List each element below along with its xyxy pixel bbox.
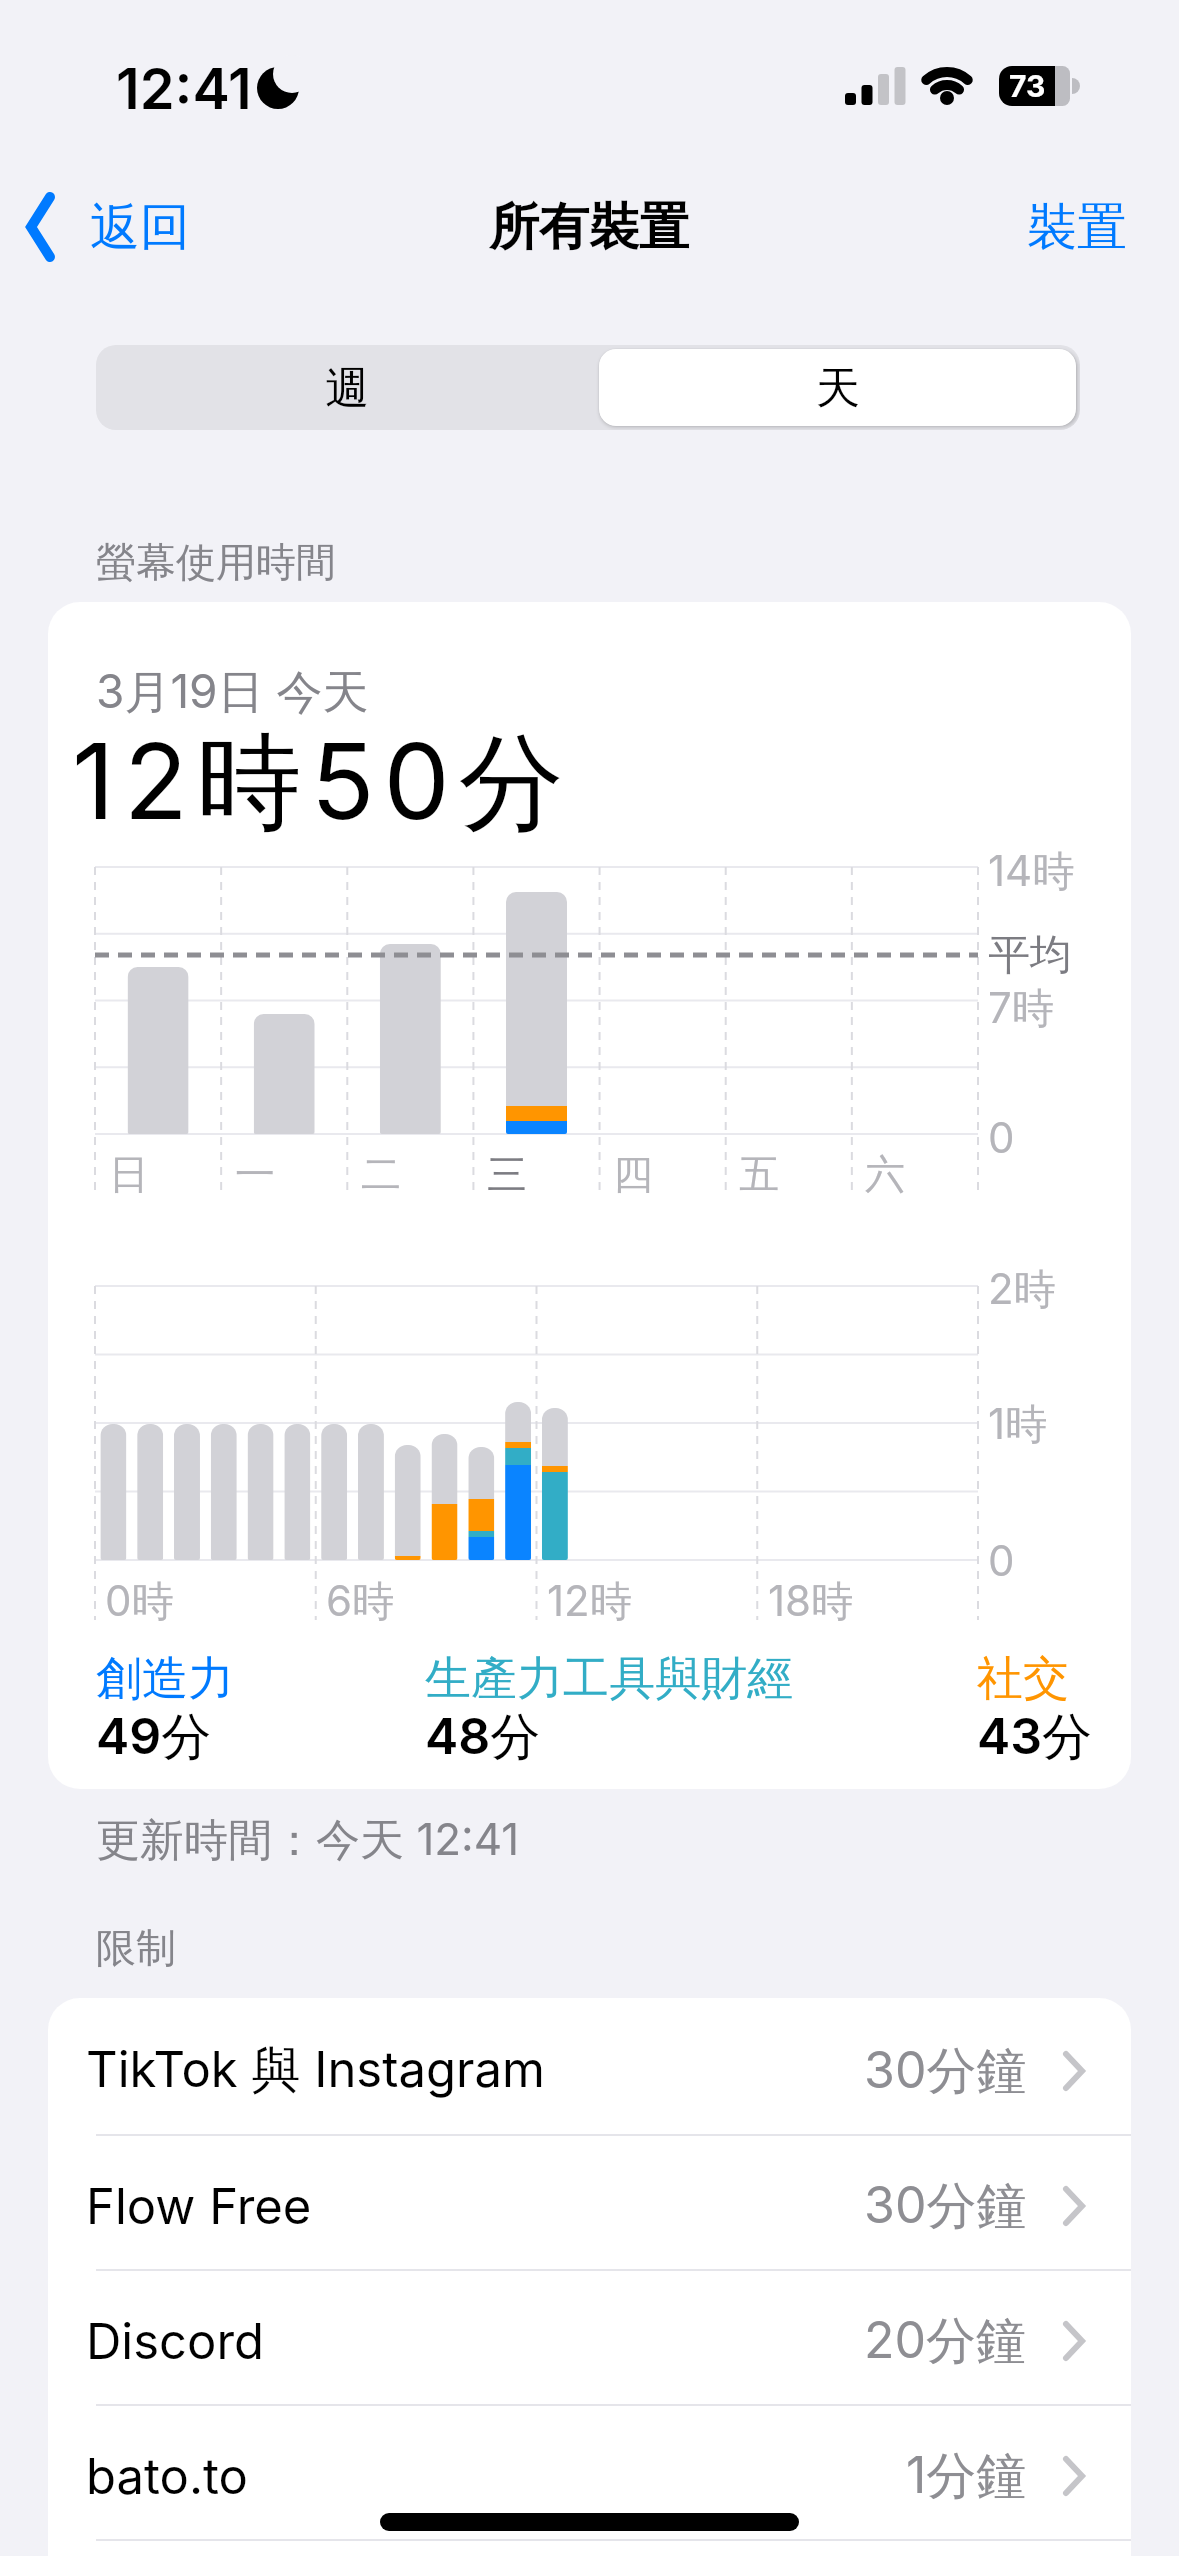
staticText: 1時 <box>988 1398 1048 1451</box>
staticText: 12時50分 <box>72 717 573 850</box>
staticText: 返回 <box>90 196 190 259</box>
staticText: Flow Free <box>86 2177 312 2236</box>
staticText: 社交 <box>977 1650 1069 1708</box>
staticText: 14時 <box>988 845 1075 898</box>
staticText: 0時 <box>105 1575 174 1628</box>
staticText: 0 <box>988 1112 1015 1163</box>
staticText: 48分 <box>425 1706 541 1769</box>
staticText: 一 <box>235 1149 275 1199</box>
staticText: 三 <box>487 1149 527 1199</box>
staticText: 四 <box>613 1149 653 1199</box>
staticText: 73 <box>1009 68 1046 104</box>
staticText: 30分鐘 <box>864 2175 1027 2238</box>
staticText: 7時 <box>988 982 1054 1035</box>
staticText: 49分 <box>96 1706 212 1769</box>
staticText: 週 <box>325 361 369 416</box>
staticText: 12:41 <box>116 55 252 123</box>
staticText: bato.to <box>86 2447 248 2506</box>
staticText: 五 <box>739 1149 779 1199</box>
staticText: 2時 <box>988 1263 1056 1316</box>
staticText: 6時 <box>326 1575 395 1628</box>
staticText: 日 <box>109 1149 149 1199</box>
button[interactable] <box>48 2004 1131 2138</box>
staticText: 20分鐘 <box>864 2310 1027 2373</box>
staticText: 限制 <box>96 1923 176 1973</box>
staticText: 裝置 <box>1027 196 1127 259</box>
staticText: 生產力工具與財經 <box>425 1650 793 1708</box>
staticText: 43分 <box>977 1706 1093 1769</box>
staticText: 18時 <box>768 1575 854 1628</box>
staticText: 0 <box>988 1535 1015 1586</box>
staticText: 天 <box>816 361 860 416</box>
staticText: 12時 <box>547 1575 632 1628</box>
staticText: 所有裝置 <box>489 196 689 259</box>
button[interactable] <box>16 186 216 268</box>
staticText: 二 <box>361 1149 401 1199</box>
button[interactable]: 裝置 <box>927 187 1127 267</box>
staticText: 螢幕使用時間 <box>96 537 336 587</box>
staticText: 30分鐘 <box>864 2040 1027 2103</box>
staticText: TikTok 與 Instagram <box>86 2040 545 2102</box>
button[interactable] <box>599 349 1076 426</box>
button[interactable] <box>48 2139 1131 2273</box>
button[interactable] <box>48 2409 1131 2543</box>
staticText: 3月19日 今天 <box>96 663 369 721</box>
staticText: 更新時間：今天 12:41 <box>96 1812 520 1868</box>
button[interactable] <box>48 2274 1131 2408</box>
staticText: 六 <box>865 1149 905 1199</box>
staticText: 創造力 <box>96 1650 234 1708</box>
staticText: 平均 <box>988 929 1072 982</box>
staticText: 1分鐘 <box>906 2445 1027 2508</box>
button[interactable] <box>96 345 588 430</box>
staticText: Discord <box>86 2312 265 2371</box>
